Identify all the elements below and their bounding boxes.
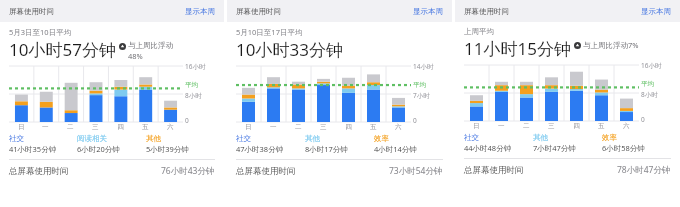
button[interactable]: 显示本周 xyxy=(176,3,224,20)
staticText: 78小时47分钟 xyxy=(617,164,671,176)
staticText: 二 xyxy=(67,123,74,131)
button[interactable]: 与上周比浮动 7% xyxy=(574,40,640,50)
staticText: 47小时38分钟 xyxy=(236,144,284,154)
staticText: 二 xyxy=(295,123,302,131)
staticText: 8小时 xyxy=(185,91,202,100)
staticText: 一 xyxy=(498,122,505,130)
staticText: 日 xyxy=(245,123,252,131)
staticText: 三 xyxy=(320,123,327,131)
staticText: 五 xyxy=(142,123,149,131)
staticText: 二 xyxy=(523,122,530,130)
staticText: 与上周比浮动48% xyxy=(128,41,185,61)
staticText: 8小时 xyxy=(641,90,658,99)
button[interactable]: 显示本周 xyxy=(632,3,680,20)
staticText: 其他 xyxy=(146,134,161,143)
staticText: 总屏幕使用时间 xyxy=(464,165,524,176)
staticText: 社交 xyxy=(236,134,251,143)
staticText: 7小时 xyxy=(413,91,430,100)
staticText: 阅读相关 xyxy=(77,134,107,143)
staticText: 10小时33分钟 xyxy=(236,38,343,61)
staticText: 5小时39分钟 xyxy=(146,144,189,154)
staticText: 8小时17分钟 xyxy=(305,144,348,154)
staticText: 上周平均 xyxy=(464,27,494,36)
staticText: 5月3日至10日平均 xyxy=(9,27,72,37)
staticText: 其他 xyxy=(305,134,320,143)
staticText: 显示本周 xyxy=(413,7,443,16)
staticText: 76小时43分钟 xyxy=(161,165,215,177)
staticText: 16小时 xyxy=(185,62,206,71)
staticText: 六 xyxy=(623,122,630,130)
staticText: 4小时14分钟 xyxy=(374,144,417,154)
staticText: 7小时47分钟 xyxy=(533,143,576,153)
staticText: 11小时15分钟 xyxy=(464,37,571,60)
button[interactable]: 总屏幕使用时间 xyxy=(236,165,443,177)
staticText: 日 xyxy=(18,123,25,131)
button[interactable]: 与上周比浮动 48% xyxy=(119,41,185,61)
staticText: 五 xyxy=(598,122,605,130)
staticText: 四 xyxy=(117,123,124,131)
button[interactable]: 其他 xyxy=(146,134,215,154)
staticText: 四 xyxy=(573,122,580,130)
staticText: 平均 xyxy=(641,80,654,88)
button[interactable]: 其他 xyxy=(305,134,374,154)
staticText: 六 xyxy=(167,123,174,131)
staticText: 三 xyxy=(92,123,99,131)
staticText: 一 xyxy=(270,123,277,131)
staticText: 10小时57分钟 xyxy=(9,38,116,61)
button[interactable]: 社交 xyxy=(464,133,533,153)
button[interactable]: 效率 xyxy=(602,133,671,153)
staticText: 0 xyxy=(185,116,189,125)
staticText: 73小时54分钟 xyxy=(389,165,443,177)
staticText: 6小时20分钟 xyxy=(77,144,120,154)
staticText: 五 xyxy=(370,123,377,131)
button[interactable]: 社交 xyxy=(9,134,77,154)
staticText: 与上周比浮动7% xyxy=(583,40,640,50)
staticText: 日 xyxy=(473,122,480,130)
staticText: 5月10日至17日平均 xyxy=(236,27,303,37)
staticText: 平均 xyxy=(413,81,426,89)
staticText: 0 xyxy=(641,115,645,124)
staticText: 效率 xyxy=(374,134,389,143)
staticText: 14小时 xyxy=(413,62,434,71)
staticText: 总屏幕使用时间 xyxy=(9,166,69,177)
button[interactable]: 阅读相关 xyxy=(77,134,146,154)
staticText: 四 xyxy=(345,123,352,131)
staticText: 一 xyxy=(42,123,49,131)
staticText: 16小时 xyxy=(641,61,662,70)
button[interactable]: 总屏幕使用时间 xyxy=(9,165,215,177)
staticText: 社交 xyxy=(464,133,479,142)
staticText: 效率 xyxy=(602,133,617,142)
button[interactable]: 显示本周 xyxy=(404,3,452,20)
button[interactable]: 总屏幕使用时间 xyxy=(464,164,671,176)
staticText: 社交 xyxy=(9,134,24,143)
staticText: 六 xyxy=(395,123,402,131)
staticText: 显示本周 xyxy=(641,7,671,16)
staticText: 屏幕使用时间 xyxy=(236,7,281,16)
staticText: 三 xyxy=(548,122,555,130)
staticText: 其他 xyxy=(533,133,548,142)
staticText: 0 xyxy=(413,116,417,125)
staticText: 44小时48分钟 xyxy=(464,143,512,153)
staticText: 总屏幕使用时间 xyxy=(236,166,296,177)
staticText: 显示本周 xyxy=(185,7,215,16)
button[interactable]: 效率 xyxy=(374,134,443,154)
staticText: 平均 xyxy=(185,81,198,89)
button[interactable]: 其他 xyxy=(533,133,602,153)
staticText: 41小时35分钟 xyxy=(9,144,57,154)
staticText: 屏幕使用时间 xyxy=(464,7,509,16)
staticText: 屏幕使用时间 xyxy=(9,7,54,16)
button[interactable]: 社交 xyxy=(236,134,305,154)
staticText: 6小时58分钟 xyxy=(602,143,645,153)
